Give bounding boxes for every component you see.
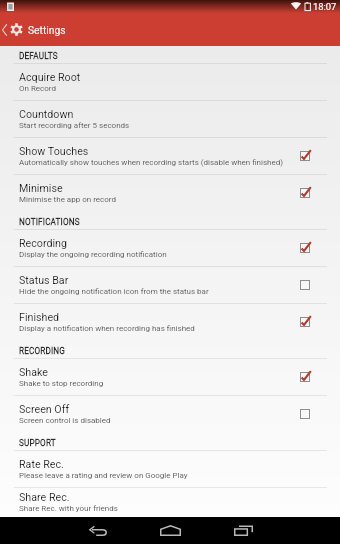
staticText: Hide the ongoing notification icon from … [19,287,209,296]
button[interactable]: Home [134,517,206,544]
button[interactable]: Recent apps [206,517,340,544]
staticText: Screen Off [19,403,70,416]
button[interactable]: Shake [0,359,340,396]
staticText: Countdown [19,108,74,121]
staticText: DEFAULTS [19,51,58,61]
button[interactable]: Back [0,517,134,544]
button[interactable]: Minimise [0,175,340,212]
staticText: Display the ongoing recording notificati… [19,250,167,259]
button[interactable]: Countdown [0,101,340,138]
staticText: NOTIFICATIONS [19,217,80,227]
staticText: Automatically show touches when recordin… [19,158,284,167]
staticText: Share Rec. [19,491,70,504]
staticText: Show Touches [19,145,89,158]
staticText: RECORDING [19,346,66,356]
staticText: Shake [19,366,49,379]
staticText: 18:07 [313,1,337,12]
button[interactable]: Finished [0,304,340,341]
staticText: Minimise the app on record [19,195,116,204]
staticText: Minimise [19,182,63,195]
staticText: Share Rec. with your friends [19,504,118,513]
button[interactable]: Share Rec. [0,488,340,517]
staticText: Screen control is disabled [19,416,111,425]
button[interactable]: Acquire Root [0,64,340,101]
staticText: Recording [19,237,67,250]
staticText: Settings [28,24,66,36]
staticText: Finished [19,311,60,324]
button[interactable]: Screen Off [0,396,340,433]
staticText: Acquire Root [19,71,81,84]
button[interactable]: Recording [0,230,340,267]
staticText: Display a notification when recording ha… [19,324,195,333]
staticText: Rate Rec. [19,458,64,471]
button[interactable]: Status Bar [0,267,340,304]
button[interactable]: Back, Settings [0,13,66,46]
staticText: On Record [19,84,56,93]
button[interactable]: Show Touches [0,138,340,175]
button[interactable]: Rate Rec. [0,451,340,488]
staticText: Status Bar [19,274,69,287]
staticText: Shake to stop recording [19,379,104,388]
staticText: Start recording after 5 seconds [19,121,130,130]
staticText: Please leave a rating and review on Goog… [19,471,188,480]
staticText: SUPPORT [19,438,56,448]
